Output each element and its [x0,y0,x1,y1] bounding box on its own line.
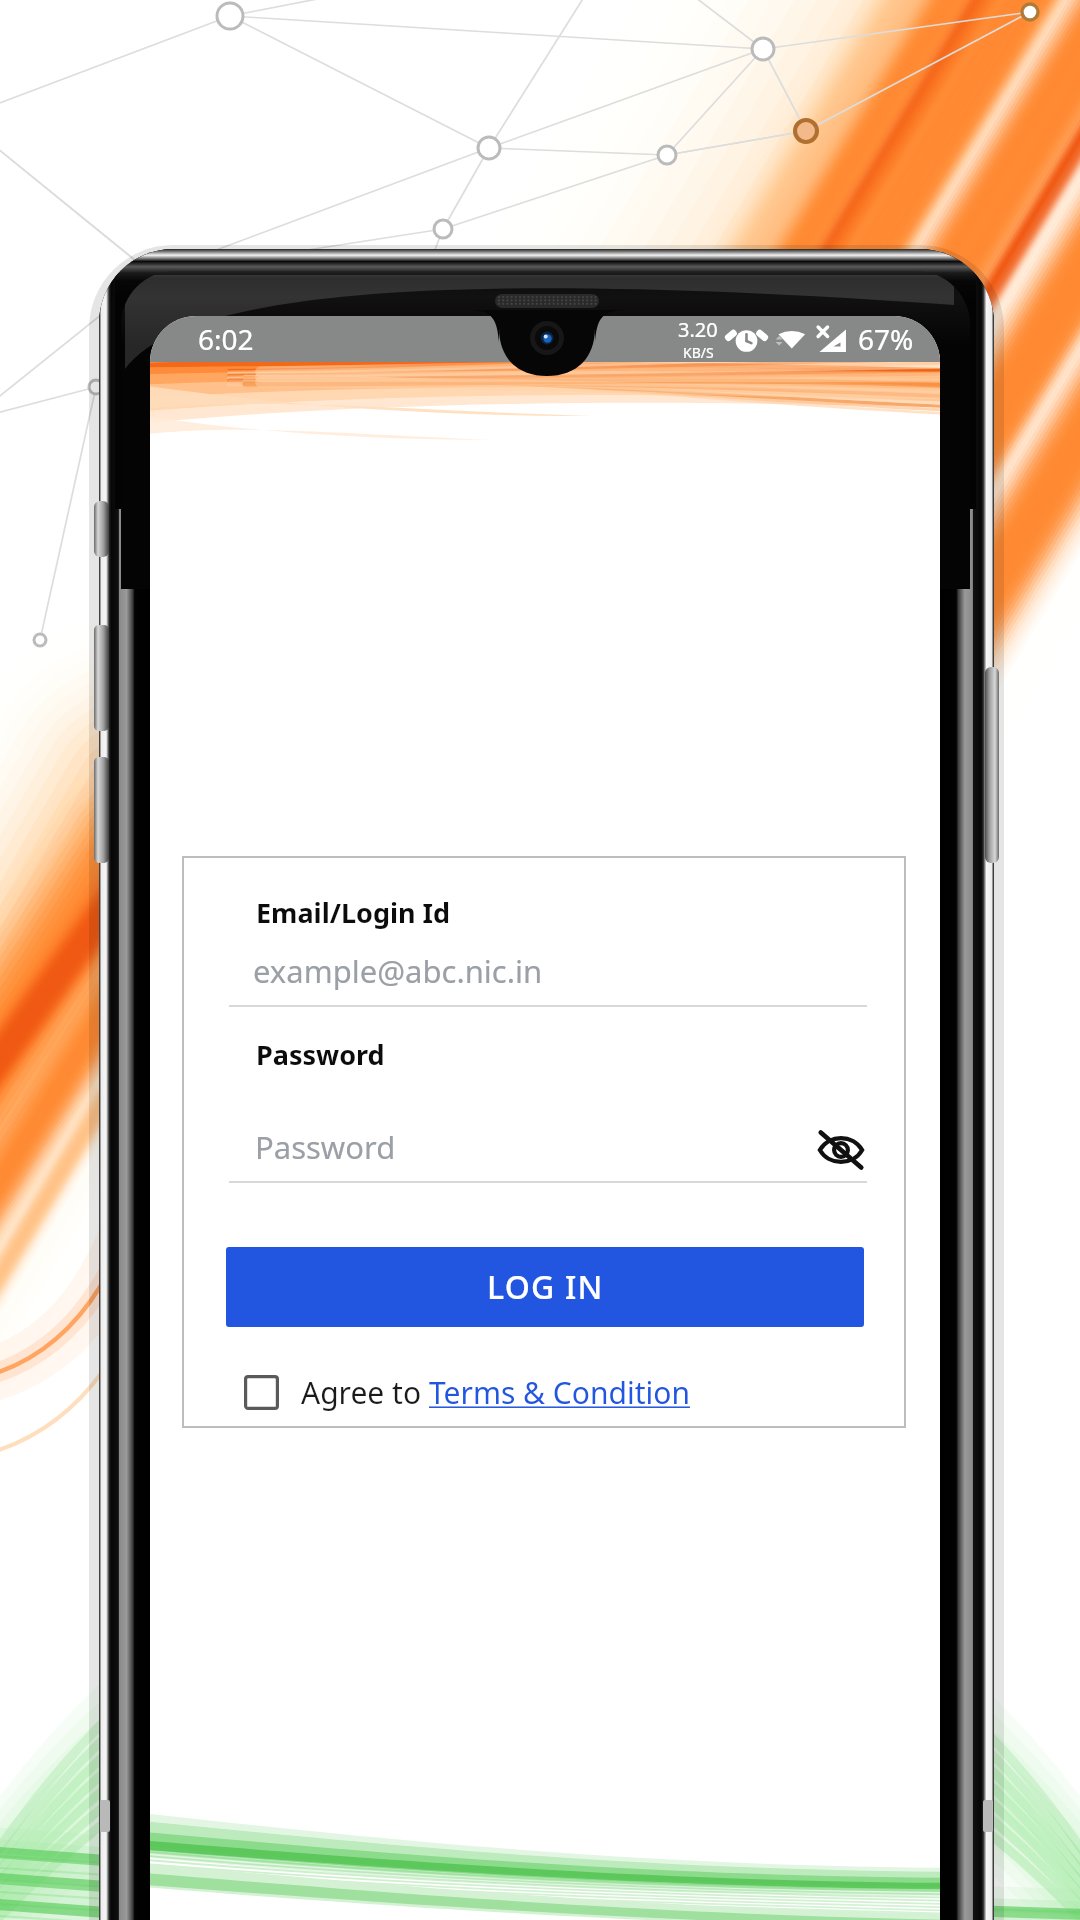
staticText: 6:02 [198,320,254,358]
staticText: Email/Login Id [256,894,451,931]
staticText: 67% [858,320,914,358]
button[interactable]: Email or login id field [229,940,867,1008]
staticText: LOG IN [487,1265,604,1309]
button[interactable]: LOG IN [226,1247,864,1327]
staticText: KB/S [683,343,714,362]
staticText: Terms & Condition [429,1372,690,1413]
button[interactable]: Show password [809,1118,873,1182]
staticText: Password [255,1126,396,1168]
staticText: Agree to [301,1372,429,1413]
button[interactable]: Password field [229,1116,789,1184]
staticText: example@abc.nic.in [253,950,543,992]
staticText: 3.20 [678,316,718,343]
button[interactable]: Agree to [244,1366,690,1418]
staticText: Password [256,1036,385,1073]
